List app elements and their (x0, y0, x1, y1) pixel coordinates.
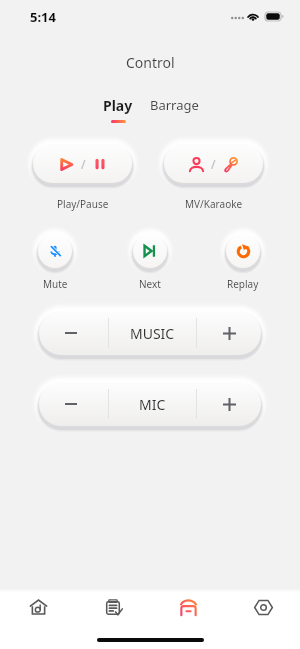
staticText: / (81, 156, 86, 172)
button[interactable]: Control (165, 589, 211, 625)
button[interactable]: Mute (38, 234, 72, 268)
button[interactable]: Home (15, 589, 61, 625)
staticText: MIC (139, 395, 166, 414)
staticText: / (211, 156, 216, 172)
button[interactable]: Replay (226, 234, 260, 268)
button[interactable]: Settings (240, 589, 286, 625)
button[interactable]: Orders (90, 589, 136, 625)
staticText: Barrage (150, 96, 199, 114)
button[interactable]: Decrease MIC (39, 382, 108, 426)
staticText: Next (139, 277, 161, 291)
staticText: Mute (43, 277, 68, 291)
staticText: Play/Pause (57, 197, 109, 211)
button[interactable]: Decrease MUSIC (39, 311, 108, 355)
button[interactable]: Play (96, 96, 140, 123)
button[interactable]: Barrage (146, 96, 202, 114)
staticText: MUSIC (130, 324, 175, 343)
button[interactable]: Increase MUSIC (197, 311, 261, 355)
button[interactable]: / (33, 144, 132, 183)
button[interactable]: / (164, 144, 263, 183)
staticText: Replay (227, 277, 259, 291)
staticText: MV/Karaoke (185, 197, 243, 211)
staticText: 5:14 (30, 8, 56, 26)
staticText: Play (103, 96, 133, 115)
staticText: Control (126, 53, 175, 72)
button[interactable]: Increase MIC (197, 382, 261, 426)
button[interactable]: Next (133, 234, 167, 268)
